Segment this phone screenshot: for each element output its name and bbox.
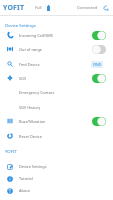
staticText: SOS xyxy=(19,76,27,81)
button[interactable]: About xyxy=(0,184,113,197)
button[interactable]: Reset Device xyxy=(0,129,113,143)
staticText: Tutorial xyxy=(19,176,33,181)
button[interactable]: SOS xyxy=(0,71,113,85)
button[interactable]: SOS History xyxy=(0,100,113,114)
button[interactable]: Find Device xyxy=(0,57,113,71)
staticText: Emergency Contact xyxy=(19,90,55,95)
button[interactable]: Device Settings xyxy=(0,160,113,173)
staticText: SOS History xyxy=(19,105,41,110)
button[interactable]: Switch off xyxy=(92,45,106,54)
button[interactable]: Switch on xyxy=(92,31,106,40)
button[interactable]: Out of range xyxy=(0,42,113,56)
staticText: Buzz/Vibration xyxy=(19,119,46,124)
staticText: Device Settings xyxy=(5,22,36,28)
button[interactable]: Emergency Contact xyxy=(0,85,113,99)
button[interactable]: Incoming Call/SMS xyxy=(0,28,113,42)
button[interactable]: Tutorial xyxy=(0,172,113,185)
staticText: Incoming Call/SMS xyxy=(19,33,53,38)
button[interactable]: Switch on xyxy=(92,74,106,83)
staticText: Reset Device xyxy=(19,134,42,139)
staticText: Out of range xyxy=(19,47,42,52)
button[interactable]: Switch on xyxy=(92,117,106,126)
staticText: YOFIT xyxy=(5,148,17,154)
staticText: Find Device xyxy=(19,62,40,67)
staticText: Full xyxy=(35,5,42,10)
staticText: FIND xyxy=(93,62,102,67)
other: Sync xyxy=(103,5,109,11)
button[interactable]: Buzz/Vibration xyxy=(0,114,113,128)
button[interactable]: FIND xyxy=(91,61,103,68)
staticText: Device Settings xyxy=(19,164,47,169)
staticText: Connected xyxy=(77,5,98,10)
staticText: About xyxy=(19,188,30,193)
staticText: YOFIT xyxy=(3,3,25,13)
